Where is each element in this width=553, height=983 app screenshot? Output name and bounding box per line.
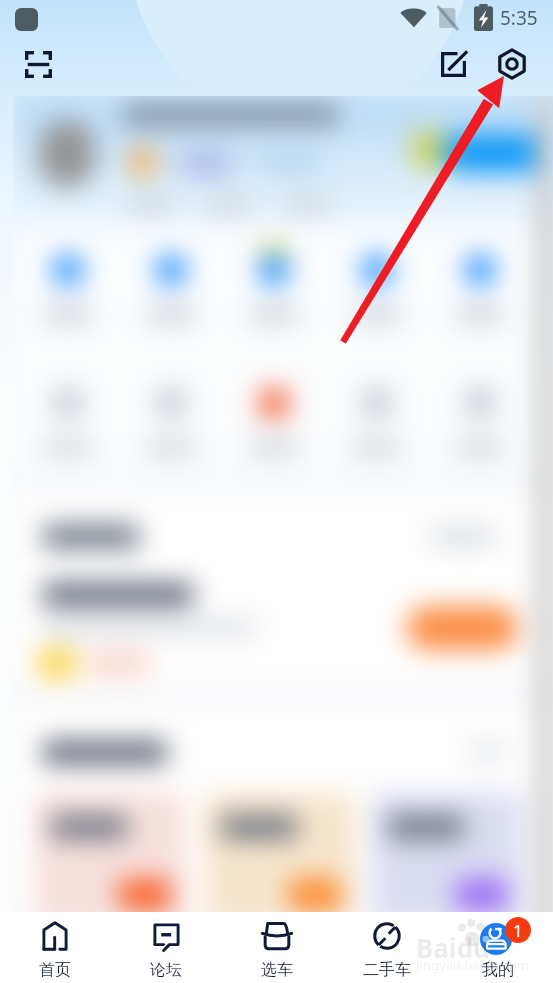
button[interactable]: 设置 — [491, 43, 533, 85]
button[interactable]: 论坛 — [111, 912, 221, 983]
button[interactable]: 扫一扫 — [18, 44, 58, 84]
staticText: Jingyan.baidu.com — [416, 956, 529, 974]
staticText: 我的 — [482, 960, 514, 980]
staticText: 1 — [513, 919, 523, 942]
button[interactable]: 1 — [443, 912, 553, 983]
button[interactable]: 选车 — [222, 912, 332, 983]
staticText: 二手车 — [363, 960, 411, 980]
button[interactable]: 首页 — [0, 912, 110, 983]
staticText: Baidu — [416, 930, 490, 965]
staticText: 首页 — [39, 960, 71, 980]
button[interactable]: 发帖 — [433, 44, 473, 84]
button[interactable]: 二手车 — [332, 912, 442, 983]
staticText: 论坛 — [150, 960, 182, 980]
staticText: 选车 — [261, 960, 293, 980]
staticText: 5:35 — [500, 5, 538, 31]
